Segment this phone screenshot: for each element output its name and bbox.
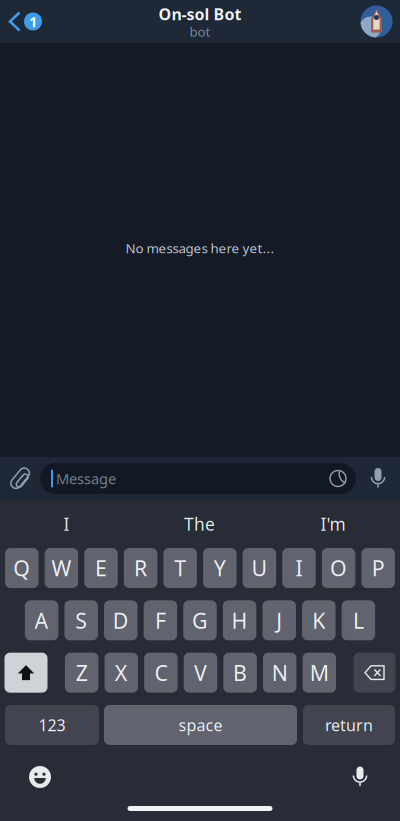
- button[interactable]: return: [303, 705, 395, 745]
- staticText: 1: [29, 12, 37, 31]
- staticText: O: [330, 554, 347, 582]
- button[interactable]: N: [263, 653, 296, 693]
- staticText: I'm: [320, 512, 345, 535]
- button[interactable]: Stickers: [330, 464, 356, 492]
- staticText: Z: [76, 658, 88, 687]
- button[interactable]: L: [342, 600, 375, 640]
- staticText: M: [310, 658, 329, 687]
- button[interactable]: space: [104, 705, 297, 745]
- staticText: V: [194, 658, 207, 687]
- button[interactable]: V: [184, 653, 217, 693]
- button[interactable]: Q: [5, 548, 39, 588]
- button[interactable]: Dictation: [332, 752, 388, 802]
- button[interactable]: Emoji: [12, 752, 68, 802]
- staticText: Q: [13, 554, 30, 582]
- staticText: C: [154, 658, 167, 687]
- staticText: The: [184, 512, 215, 535]
- button[interactable]: T: [163, 548, 197, 588]
- button[interactable]: H: [223, 600, 256, 640]
- button[interactable]: Delete: [353, 653, 395, 693]
- button[interactable]: K: [302, 600, 335, 640]
- staticText: No messages here yet...: [125, 239, 274, 257]
- button[interactable]: Y: [203, 548, 237, 588]
- staticText: J: [276, 606, 282, 634]
- staticText: W: [51, 554, 71, 582]
- staticText: X: [115, 658, 128, 687]
- staticText: P: [372, 554, 385, 582]
- button[interactable]: I'm: [266, 500, 400, 548]
- staticText: Message: [56, 469, 116, 488]
- staticText: R: [134, 554, 147, 582]
- staticText: A: [35, 606, 49, 634]
- staticText: return: [325, 714, 373, 735]
- staticText: B: [233, 658, 247, 687]
- staticText: D: [113, 606, 129, 634]
- button[interactable]: Back: [0, 0, 50, 43]
- button[interactable]: B: [223, 653, 257, 693]
- staticText: S: [75, 606, 87, 634]
- staticText: G: [192, 606, 208, 634]
- staticText: L: [353, 606, 364, 634]
- button[interactable]: Z: [65, 653, 98, 693]
- button[interactable]: D: [104, 600, 137, 640]
- button[interactable]: Chat info: [360, 0, 400, 43]
- button[interactable]: Shift: [4, 653, 47, 693]
- button[interactable]: J: [262, 600, 296, 640]
- staticText: space: [178, 714, 222, 735]
- staticText: 123: [38, 714, 65, 735]
- button[interactable]: U: [243, 548, 276, 588]
- button[interactable]: 123: [5, 705, 99, 745]
- staticText: E: [95, 554, 107, 582]
- button[interactable]: G: [183, 600, 217, 640]
- staticText: Y: [214, 554, 226, 582]
- staticText: U: [251, 554, 267, 582]
- button[interactable]: A: [25, 600, 58, 640]
- staticText: I: [295, 554, 302, 582]
- button[interactable]: F: [144, 600, 177, 640]
- button[interactable]: I: [282, 548, 316, 588]
- staticText: K: [312, 606, 325, 634]
- staticText: I: [63, 512, 69, 535]
- button[interactable]: S: [64, 600, 98, 640]
- button[interactable]: M: [302, 653, 336, 693]
- staticText: bot: [189, 23, 210, 40]
- staticText: H: [232, 606, 248, 634]
- button[interactable]: R: [124, 548, 157, 588]
- button[interactable]: W: [45, 548, 78, 588]
- button[interactable]: Voice message: [356, 457, 400, 500]
- staticText: N: [272, 658, 288, 687]
- staticText: T: [174, 554, 186, 582]
- button[interactable]: I: [0, 500, 133, 548]
- staticText: On-sol Bot: [158, 3, 241, 25]
- button[interactable]: Attach: [0, 457, 40, 500]
- button[interactable]: C: [144, 653, 178, 693]
- button[interactable]: X: [104, 653, 138, 693]
- button[interactable]: The: [133, 500, 266, 548]
- staticText: F: [155, 606, 166, 634]
- button[interactable]: P: [361, 548, 395, 588]
- button[interactable]: E: [84, 548, 118, 588]
- button[interactable]: O: [322, 548, 355, 588]
